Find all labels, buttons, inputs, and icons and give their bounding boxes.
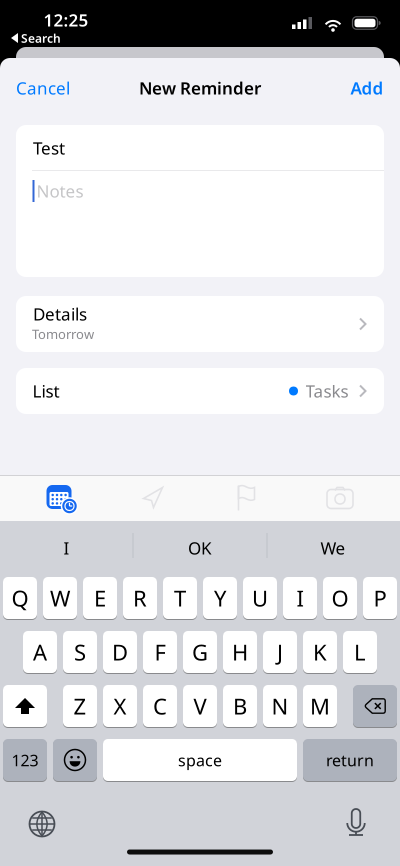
staticText: New Reminder xyxy=(139,76,261,100)
button[interactable]: OK xyxy=(136,526,264,570)
staticText: List xyxy=(32,379,59,403)
button[interactable]: G xyxy=(183,631,217,673)
staticText: M xyxy=(310,691,330,721)
staticText: OK xyxy=(188,536,212,560)
staticText: I xyxy=(63,536,69,560)
button[interactable]: Details xyxy=(16,296,384,352)
staticText: Z xyxy=(73,691,86,721)
button[interactable]: Cancel xyxy=(16,76,70,100)
staticText: N xyxy=(271,691,288,721)
staticText: G xyxy=(192,637,208,667)
button[interactable]: J xyxy=(263,631,297,673)
button[interactable]: K xyxy=(303,631,337,673)
button[interactable]: C xyxy=(143,685,177,727)
button[interactable]: return xyxy=(303,739,397,781)
button[interactable]: N xyxy=(263,685,297,727)
button[interactable]: E xyxy=(83,577,117,619)
button[interactable]: Add xyxy=(350,76,383,100)
button[interactable]: B xyxy=(223,685,257,727)
staticText: Cancel xyxy=(16,76,70,100)
staticText: Tomorrow xyxy=(32,325,94,343)
button[interactable]: P xyxy=(363,577,397,619)
button[interactable]: Y xyxy=(203,577,237,619)
button[interactable]: Z xyxy=(63,685,97,727)
button[interactable]: Shift xyxy=(3,685,47,727)
staticText: F xyxy=(154,637,165,667)
staticText: space xyxy=(178,749,222,771)
staticText: Details xyxy=(33,302,87,326)
staticText: 12:25 xyxy=(43,8,88,32)
staticText: A xyxy=(33,637,47,667)
staticText: J xyxy=(277,637,283,667)
staticText: W xyxy=(50,583,70,613)
staticText: I xyxy=(296,583,303,613)
button[interactable]: 123 xyxy=(3,739,47,781)
staticText: U xyxy=(252,583,268,613)
button[interactable]: List xyxy=(16,368,384,414)
button[interactable]: O xyxy=(323,577,357,619)
staticText: O xyxy=(331,583,348,613)
staticText: Notes xyxy=(36,179,83,203)
staticText: P xyxy=(373,583,386,613)
button[interactable]: space xyxy=(103,739,297,781)
button[interactable]: We xyxy=(269,526,397,570)
button[interactable]: Next Keyboard xyxy=(20,802,64,846)
staticText: E xyxy=(94,583,106,613)
button[interactable]: D xyxy=(103,631,137,673)
button[interactable]: Flag xyxy=(224,476,268,520)
staticText: X xyxy=(113,691,126,721)
staticText: 123 xyxy=(11,749,38,771)
button[interactable]: Add Location xyxy=(131,476,175,520)
button[interactable]: F xyxy=(143,631,177,673)
button[interactable]: X xyxy=(103,685,137,727)
button[interactable]: A xyxy=(23,631,57,673)
staticText: Q xyxy=(11,583,28,613)
staticText: C xyxy=(153,691,167,721)
button[interactable]: Delete xyxy=(353,685,397,727)
button[interactable]: I xyxy=(283,577,317,619)
button[interactable]: Add Photo xyxy=(318,476,362,520)
button[interactable]: Dictation xyxy=(334,800,378,844)
button[interactable]: Back to Search xyxy=(11,30,61,46)
button[interactable]: Q xyxy=(3,577,37,619)
button[interactable]: T xyxy=(163,577,197,619)
staticText: Test xyxy=(33,136,65,160)
button[interactable]: R xyxy=(123,577,157,619)
staticText: S xyxy=(74,637,86,667)
staticText: L xyxy=(354,637,366,667)
staticText: Add xyxy=(350,76,383,100)
button[interactable]: S xyxy=(63,631,97,673)
staticText: We xyxy=(320,536,345,560)
staticText: D xyxy=(112,637,128,667)
staticText: return xyxy=(326,749,374,771)
staticText: K xyxy=(313,637,327,667)
staticText: R xyxy=(133,583,147,613)
button[interactable]: L xyxy=(343,631,377,673)
button[interactable]: Test xyxy=(16,125,384,277)
button[interactable]: Add Date xyxy=(40,478,84,522)
staticText: T xyxy=(174,583,186,613)
button[interactable]: U xyxy=(243,577,277,619)
staticText: V xyxy=(193,691,206,721)
staticText: Search xyxy=(21,30,61,46)
staticText: Y xyxy=(214,583,226,613)
button[interactable]: Emoji xyxy=(53,739,97,781)
staticText: H xyxy=(232,637,248,667)
staticText: Tasks xyxy=(305,379,348,403)
button[interactable]: H xyxy=(223,631,257,673)
staticText: B xyxy=(233,691,247,721)
button[interactable]: I xyxy=(2,526,130,570)
button[interactable]: V xyxy=(183,685,217,727)
button[interactable]: W xyxy=(43,577,77,619)
button[interactable]: M xyxy=(303,685,337,727)
